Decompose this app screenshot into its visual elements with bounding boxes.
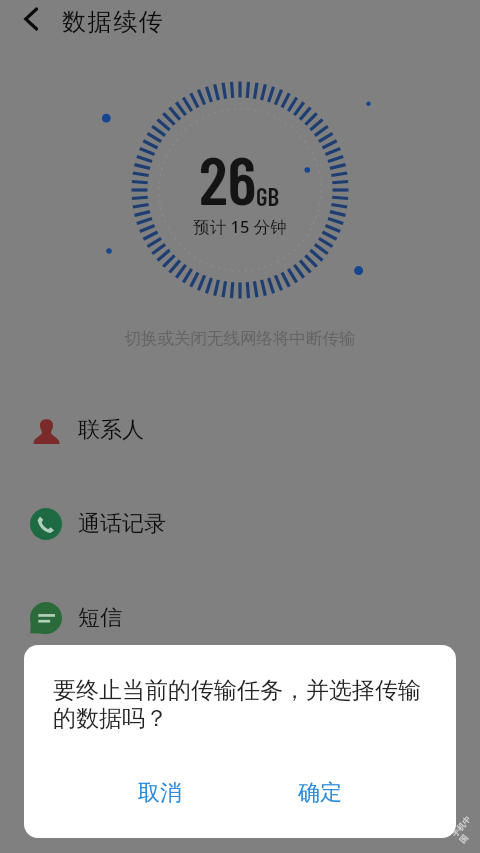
- staticText: 联系人: [78, 416, 144, 444]
- staticText: 26: [199, 138, 257, 218]
- staticText: 确定: [298, 779, 342, 807]
- staticText: 要终止当前的传输任务，并选择传输的数据吗？: [53, 676, 431, 732]
- staticText: 数据续传: [62, 7, 165, 37]
- button[interactable]: 通话记录: [0, 477, 480, 571]
- staticText: 短信: [78, 604, 122, 632]
- staticText: GB: [256, 181, 280, 211]
- button[interactable]: 取消: [112, 770, 207, 816]
- staticText: 通话记录: [78, 510, 166, 538]
- button[interactable]: 短信: [0, 571, 480, 665]
- button[interactable]: Back: [15, 0, 47, 40]
- staticText: 取消: [138, 779, 182, 807]
- button[interactable]: 确定: [272, 770, 367, 816]
- button[interactable]: 联系人: [0, 383, 480, 477]
- staticText: 手机中国: [449, 812, 480, 845]
- staticText: 预计 15 分钟: [0, 215, 480, 238]
- staticText: 切换或关闭无线网络将中断传输: [0, 328, 480, 349]
